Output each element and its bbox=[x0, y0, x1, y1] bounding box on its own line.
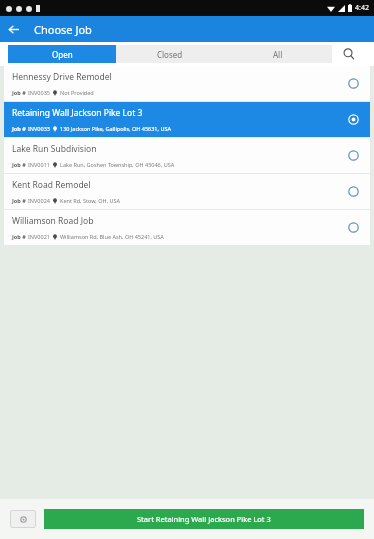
button[interactable]: Open bbox=[8, 45, 116, 63]
staticText: Start Retaining Wall Jackson Pike Lot 3 bbox=[137, 514, 271, 524]
staticText: INV0033 bbox=[28, 125, 50, 132]
staticText: Job # bbox=[12, 125, 26, 132]
staticText: Lake Run, Goshen Township, OH 45046, USA bbox=[60, 161, 175, 168]
staticText: 130 Jackson Pike, Gallipolis, OH 45631, … bbox=[60, 125, 171, 132]
staticText: Lake Run Subdivision bbox=[12, 143, 97, 155]
staticText: INV0035 bbox=[28, 89, 50, 96]
button[interactable]: Closed bbox=[116, 45, 224, 63]
staticText: Job # bbox=[12, 161, 26, 168]
staticText: Not Provided bbox=[60, 89, 94, 96]
staticText: All bbox=[273, 49, 283, 60]
staticText: INV0021 bbox=[28, 233, 50, 240]
staticText: Choose Job bbox=[34, 22, 92, 37]
button[interactable]: Lake Run Subdivision bbox=[4, 138, 370, 173]
button[interactable]: Williamson Road Job bbox=[4, 210, 370, 245]
staticText: Closed bbox=[157, 49, 183, 60]
staticText: Job # bbox=[12, 197, 26, 204]
staticText: Job # bbox=[12, 233, 26, 240]
button[interactable]: Retaining Wall Jackson Pike Lot 3 bbox=[4, 102, 370, 137]
staticText: INV0011 bbox=[28, 161, 50, 168]
staticText: Williamson Road Job bbox=[12, 215, 94, 227]
staticText: Retaining Wall Jackson Pike Lot 3 bbox=[12, 107, 143, 119]
button[interactable]: Hennessy Drive Remodel bbox=[4, 66, 370, 101]
staticText: Kent Rd, Stow, OH, USA bbox=[60, 197, 121, 204]
button[interactable]: Start Retaining Wall Jackson Pike Lot 3 bbox=[44, 509, 364, 529]
staticText: 4:42 bbox=[355, 3, 369, 13]
staticText: Kent Road Remodel bbox=[12, 179, 91, 191]
staticText: INV0024 bbox=[28, 197, 50, 204]
staticText: Open bbox=[52, 49, 73, 60]
button[interactable]: Search bbox=[332, 45, 366, 63]
button[interactable]: Kent Road Remodel bbox=[4, 174, 370, 209]
staticText: Williamson Rd, Blue Ash, OH 45241, USA bbox=[60, 233, 164, 240]
button[interactable]: Back bbox=[0, 16, 26, 42]
staticText: Job # bbox=[12, 89, 26, 96]
button[interactable]: Settings bbox=[10, 510, 36, 528]
staticText: Hennessy Drive Remodel bbox=[12, 71, 112, 83]
button[interactable]: All bbox=[224, 45, 332, 63]
